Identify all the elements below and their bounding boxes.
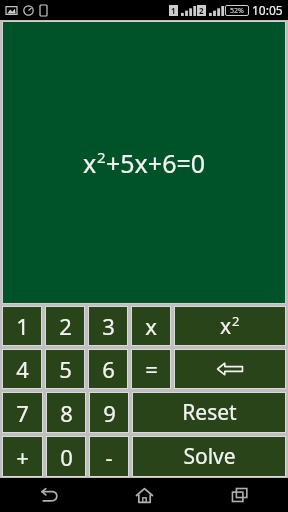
staticText: 10:05	[252, 2, 283, 18]
staticText: 2	[97, 147, 106, 167]
button[interactable]: 4	[3, 350, 41, 388]
button[interactable]: Backspace	[175, 350, 285, 388]
staticText: Reset	[182, 398, 237, 427]
staticText: x	[83, 146, 97, 180]
staticText: +5x+6=0	[106, 146, 206, 180]
staticText: 6	[102, 354, 115, 384]
button[interactable]: 6	[89, 350, 127, 388]
button[interactable]: Home	[96, 478, 192, 512]
staticText: 7	[16, 398, 29, 428]
staticText: -	[105, 442, 113, 472]
button[interactable]: x squared	[175, 307, 285, 345]
staticText: Solve	[183, 442, 236, 471]
button[interactable]: 0	[47, 437, 85, 476]
button[interactable]: 2	[46, 307, 84, 345]
staticText: x	[220, 312, 232, 341]
staticText: 9	[103, 398, 116, 428]
staticText: 1	[16, 311, 29, 341]
button[interactable]: -	[90, 437, 128, 476]
staticText: 2	[232, 312, 240, 330]
button[interactable]: Reset	[133, 393, 285, 432]
button[interactable]: Back	[0, 478, 96, 512]
button[interactable]: +	[3, 437, 42, 476]
button[interactable]: =	[132, 350, 170, 388]
staticText: 5	[59, 354, 72, 384]
staticText: 1	[171, 5, 176, 16]
staticText: +	[16, 442, 29, 472]
button[interactable]: 5	[46, 350, 84, 388]
staticText: 8	[60, 398, 73, 428]
staticText: x	[145, 311, 157, 341]
button[interactable]: 1	[3, 307, 41, 345]
staticText: 4	[16, 354, 29, 384]
button[interactable]: 9	[90, 393, 128, 432]
staticText: 2	[59, 311, 72, 341]
button[interactable]: 8	[47, 393, 85, 432]
staticText: =	[145, 354, 158, 384]
button[interactable]: 3	[89, 307, 127, 345]
staticText: 0	[60, 442, 73, 472]
staticText: 3	[102, 311, 115, 341]
button[interactable]: Recent apps	[192, 478, 288, 512]
button[interactable]: x	[132, 307, 170, 345]
staticText: 52%	[230, 6, 244, 16]
button[interactable]: Solve	[133, 437, 285, 476]
button[interactable]: 7	[3, 393, 42, 432]
staticText: 2	[199, 5, 204, 16]
